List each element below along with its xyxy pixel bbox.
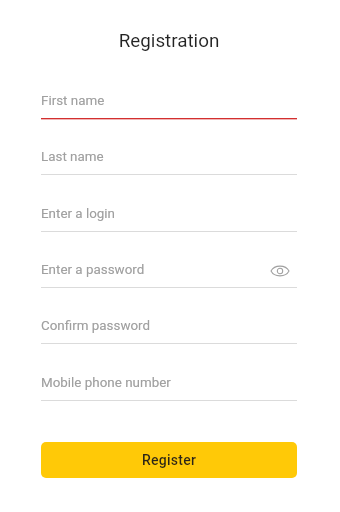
button[interactable] <box>41 90 297 119</box>
button[interactable] <box>41 146 297 175</box>
button[interactable] <box>41 203 297 232</box>
button[interactable]: Register <box>41 442 297 478</box>
staticText: Enter a password <box>41 262 145 278</box>
staticText: Register <box>142 452 197 468</box>
button[interactable] <box>41 315 297 344</box>
staticText: Confirm password <box>41 318 151 334</box>
staticText: Registration <box>0 30 339 52</box>
button[interactable]: Show password <box>267 258 293 284</box>
button[interactable] <box>41 259 297 288</box>
staticText: Last name <box>41 149 104 165</box>
button[interactable] <box>41 372 297 401</box>
staticText: Mobile phone number <box>41 375 171 391</box>
staticText: First name <box>41 93 105 109</box>
staticText: Enter a login <box>41 206 116 222</box>
